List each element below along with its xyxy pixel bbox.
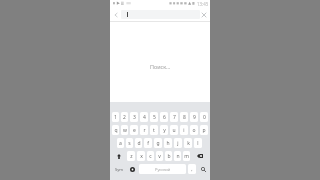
button[interactable]: 1 bbox=[112, 112, 119, 122]
button[interactable]: 9 bbox=[190, 112, 198, 122]
button[interactable]: l bbox=[194, 138, 202, 148]
button[interactable]: g bbox=[154, 138, 162, 148]
button[interactable]: e bbox=[130, 125, 138, 135]
staticText: v bbox=[158, 153, 161, 160]
staticText: h bbox=[166, 140, 170, 147]
staticText: Русский bbox=[155, 167, 171, 172]
button[interactable]: h bbox=[164, 138, 172, 148]
button[interactable]: q bbox=[112, 125, 119, 135]
staticText: p bbox=[202, 127, 206, 134]
button[interactable]: p bbox=[200, 125, 208, 135]
button[interactable]: n bbox=[174, 151, 181, 161]
staticText: k bbox=[187, 140, 190, 147]
staticText: i bbox=[183, 127, 185, 134]
staticText: q bbox=[114, 127, 118, 134]
button[interactable]: 3 bbox=[130, 112, 138, 122]
button[interactable]: 7 bbox=[170, 112, 178, 122]
staticText: 2 bbox=[123, 114, 126, 121]
staticText: 3 bbox=[133, 114, 136, 121]
staticText: l bbox=[197, 140, 199, 147]
button[interactable]: 4 bbox=[140, 112, 148, 122]
staticText: 4 bbox=[143, 114, 146, 121]
staticText: 0 bbox=[203, 114, 206, 121]
button[interactable]: 8 bbox=[180, 112, 188, 122]
staticText: 7 bbox=[173, 114, 176, 121]
button[interactable]: Shift bbox=[112, 151, 125, 161]
button[interactable]: Backspace bbox=[192, 151, 208, 161]
staticText: Поиск… bbox=[150, 63, 171, 70]
staticText: 1 bbox=[114, 114, 117, 121]
staticText: f bbox=[147, 140, 149, 147]
button[interactable]: f bbox=[144, 138, 152, 148]
button[interactable]: Search bbox=[198, 164, 208, 174]
button[interactable]: k bbox=[184, 138, 192, 148]
staticText: w bbox=[123, 127, 127, 134]
staticText: d bbox=[137, 140, 141, 147]
button[interactable]: y bbox=[160, 125, 168, 135]
button[interactable] bbox=[121, 10, 200, 19]
staticText: y bbox=[163, 127, 166, 134]
button[interactable]: x bbox=[137, 151, 145, 161]
staticText: 13:45 bbox=[197, 1, 209, 7]
staticText: 8 bbox=[183, 114, 186, 121]
button[interactable]: t bbox=[150, 125, 158, 135]
button[interactable]: Clear bbox=[197, 8, 210, 21]
button[interactable]: u bbox=[170, 125, 178, 135]
staticText: g bbox=[156, 140, 160, 147]
staticText: u bbox=[172, 127, 176, 134]
staticText: e bbox=[133, 127, 136, 134]
button[interactable]: m bbox=[183, 151, 190, 161]
button[interactable]: 6 bbox=[160, 112, 168, 122]
button[interactable]: o bbox=[190, 125, 198, 135]
button[interactable]: w bbox=[121, 125, 128, 135]
button[interactable]: c bbox=[147, 151, 154, 161]
button[interactable]: j bbox=[174, 138, 182, 148]
staticText: s bbox=[128, 140, 131, 147]
staticText: 9 bbox=[193, 114, 196, 121]
staticText: , bbox=[191, 166, 193, 173]
button[interactable]: s bbox=[126, 138, 133, 148]
button[interactable]: 2 bbox=[121, 112, 128, 122]
staticText: m bbox=[184, 153, 189, 160]
button[interactable]: v bbox=[156, 151, 163, 161]
button[interactable]: d bbox=[135, 138, 142, 148]
staticText: z bbox=[130, 153, 133, 160]
button[interactable]: r bbox=[140, 125, 148, 135]
button[interactable]: a bbox=[117, 138, 124, 148]
staticText: c bbox=[149, 153, 152, 160]
staticText: x bbox=[140, 153, 143, 160]
button[interactable]: , bbox=[188, 164, 196, 174]
staticText: Sym bbox=[115, 167, 123, 172]
button[interactable]: b bbox=[165, 151, 172, 161]
staticText: 5 bbox=[153, 114, 156, 121]
button[interactable]: z bbox=[127, 151, 135, 161]
button[interactable]: Русский bbox=[139, 164, 186, 174]
staticText: r bbox=[143, 127, 146, 134]
button[interactable]: i bbox=[180, 125, 188, 135]
staticText: a bbox=[119, 140, 122, 147]
button[interactable]: Settings bbox=[127, 164, 137, 174]
staticText: j bbox=[177, 140, 179, 147]
staticText: b bbox=[167, 153, 171, 160]
button[interactable]: 5 bbox=[150, 112, 158, 122]
button[interactable]: Sym bbox=[112, 164, 125, 174]
staticText: o bbox=[192, 127, 196, 134]
staticText: t bbox=[153, 127, 155, 134]
button[interactable]: 0 bbox=[200, 112, 208, 122]
button[interactable]: Back bbox=[109, 8, 122, 21]
staticText: 6 bbox=[163, 114, 166, 121]
staticText: n bbox=[176, 153, 180, 160]
